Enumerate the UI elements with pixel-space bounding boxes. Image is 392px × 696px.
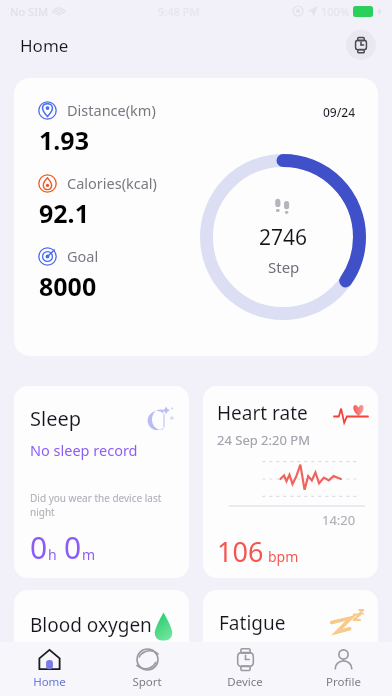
button[interactable]: Profile — [294, 642, 392, 696]
staticText: No sleep record — [30, 440, 138, 460]
staticText: Goal — [67, 246, 99, 266]
button[interactable]: Home — [0, 642, 98, 696]
staticText: Home — [20, 34, 69, 57]
staticText: 0 — [64, 527, 82, 568]
staticText: bpm — [268, 547, 299, 566]
staticText: m — [82, 545, 96, 564]
button[interactable]: Heart rate — [203, 386, 378, 578]
staticText: Distance(km) — [67, 100, 156, 120]
staticText: Sleep — [30, 405, 81, 432]
staticText: 24 Sep 2:20 PM — [217, 431, 310, 449]
button[interactable]: Sleep — [14, 386, 189, 578]
staticText: Step — [268, 257, 300, 277]
staticText: Did you wear the device last night — [30, 491, 177, 519]
staticText: Home — [33, 674, 66, 690]
staticText: Heart rate — [217, 400, 308, 426]
staticText: Calories(kcal) — [67, 173, 157, 193]
staticText: Blood oxygen — [30, 612, 152, 638]
staticText: Fatigue — [219, 610, 286, 636]
button[interactable]: 09/24 — [14, 78, 378, 356]
staticText: Device — [227, 674, 263, 690]
staticText: 92.1 — [39, 196, 89, 230]
button[interactable]: Blood oxygen — [14, 590, 189, 690]
staticText: 106 — [217, 533, 264, 570]
staticText: No SIM — [10, 4, 49, 19]
button[interactable]: Device — [196, 642, 294, 696]
staticText: 2746 — [259, 223, 308, 252]
staticText: 8000 — [39, 269, 97, 303]
staticText: 1.93 — [39, 123, 89, 157]
staticText: Profile — [326, 674, 361, 690]
staticText: h — [48, 545, 57, 564]
staticText: 09/24 — [323, 104, 356, 120]
staticText: 14:20 — [322, 511, 356, 529]
staticText: Sport — [132, 674, 162, 690]
staticText: 100% — [321, 4, 350, 19]
button[interactable]: Sport — [98, 642, 196, 696]
button[interactable]: Device — [346, 30, 376, 60]
staticText: 0 — [30, 527, 48, 568]
button[interactable]: Fatigue — [203, 590, 378, 690]
staticText: 9:48 PM — [158, 4, 200, 19]
